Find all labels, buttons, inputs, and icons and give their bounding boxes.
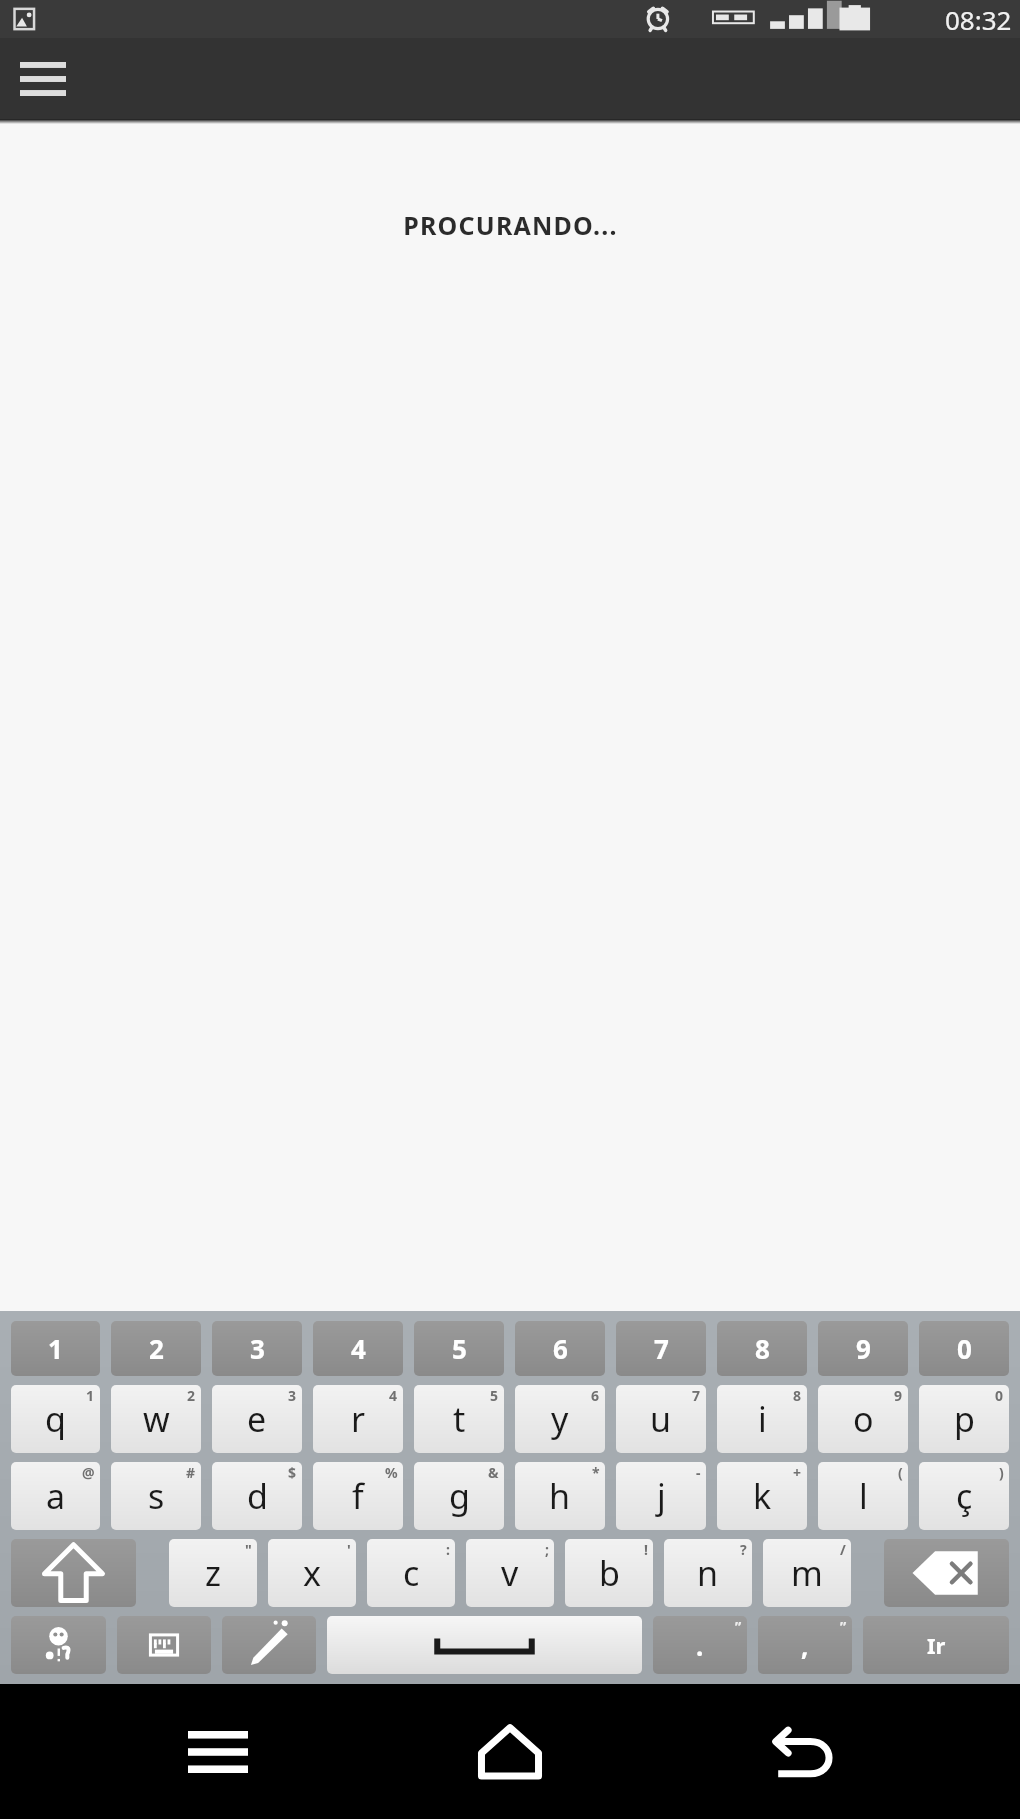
button[interactable]: 2 bbox=[111, 1321, 201, 1376]
button[interactable]: u bbox=[616, 1385, 706, 1453]
staticText: 5 bbox=[452, 1331, 467, 1366]
staticText: 2 bbox=[149, 1331, 164, 1366]
button[interactable]: a bbox=[11, 1462, 100, 1530]
staticText: u bbox=[650, 1396, 672, 1442]
staticText: % bbox=[385, 1463, 398, 1482]
staticText: ” bbox=[735, 1617, 742, 1636]
button[interactable]: w bbox=[111, 1385, 201, 1453]
button[interactable]: l bbox=[818, 1462, 908, 1530]
button[interactable]: i bbox=[717, 1385, 807, 1453]
button[interactable]: h bbox=[515, 1462, 605, 1530]
staticText: m bbox=[791, 1550, 823, 1596]
staticText: k bbox=[753, 1473, 772, 1519]
button[interactable]: q bbox=[11, 1385, 100, 1453]
button[interactable]: t bbox=[414, 1385, 504, 1453]
button[interactable]: 6 bbox=[515, 1321, 605, 1376]
staticText: r bbox=[351, 1396, 366, 1442]
staticText: ç bbox=[956, 1473, 973, 1519]
button[interactable]: Recent apps bbox=[143, 1697, 293, 1807]
button[interactable]: 3 bbox=[212, 1321, 302, 1376]
staticText: j bbox=[657, 1473, 666, 1519]
staticText: s bbox=[148, 1473, 165, 1519]
staticText: , bbox=[801, 1628, 809, 1663]
staticText: x bbox=[303, 1550, 321, 1596]
staticText: 3 bbox=[288, 1386, 297, 1405]
staticText: a bbox=[46, 1473, 66, 1519]
staticText: PROCURANDO... bbox=[403, 208, 618, 242]
staticText: 9 bbox=[894, 1386, 903, 1405]
button[interactable]: r bbox=[313, 1385, 403, 1453]
button[interactable]: 0 bbox=[919, 1321, 1009, 1376]
button[interactable]: 1 bbox=[11, 1321, 100, 1376]
staticText: i bbox=[758, 1396, 767, 1442]
button[interactable]: . bbox=[653, 1616, 747, 1674]
staticText: 9 bbox=[856, 1331, 871, 1366]
button[interactable]: Handwriting bbox=[222, 1616, 316, 1674]
button[interactable]: 4 bbox=[313, 1321, 403, 1376]
button[interactable]: , bbox=[758, 1616, 852, 1674]
staticText: 8 bbox=[793, 1386, 802, 1405]
button[interactable]: f bbox=[313, 1462, 403, 1530]
button[interactable]: ç bbox=[919, 1462, 1009, 1530]
staticText: d bbox=[247, 1473, 268, 1519]
staticText: ' bbox=[347, 1540, 351, 1559]
button[interactable]: Backspace bbox=[884, 1539, 1009, 1607]
button[interactable]: Shift bbox=[11, 1539, 136, 1607]
button[interactable]: y bbox=[515, 1385, 605, 1453]
button[interactable]: Space bbox=[327, 1616, 642, 1674]
staticText: q bbox=[45, 1396, 66, 1442]
button[interactable]: Menu bbox=[12, 51, 74, 107]
staticText: 2 bbox=[187, 1386, 196, 1405]
staticText: 0 bbox=[957, 1331, 972, 1366]
staticText: p bbox=[954, 1396, 975, 1442]
button[interactable]: Symbols bbox=[11, 1616, 106, 1674]
button[interactable]: e bbox=[212, 1385, 302, 1453]
staticText: y bbox=[551, 1396, 569, 1442]
button[interactable]: z bbox=[169, 1539, 257, 1607]
button[interactable]: o bbox=[818, 1385, 908, 1453]
button[interactable]: p bbox=[919, 1385, 1009, 1453]
button[interactable]: c bbox=[367, 1539, 455, 1607]
staticText: - bbox=[696, 1463, 701, 1482]
staticText: f bbox=[352, 1473, 364, 1519]
staticText: # bbox=[186, 1463, 196, 1482]
button[interactable]: 8 bbox=[717, 1321, 807, 1376]
button[interactable]: 5 bbox=[414, 1321, 504, 1376]
staticText: 3 bbox=[250, 1331, 265, 1366]
staticText: 5 bbox=[490, 1386, 499, 1405]
button[interactable]: 9 bbox=[818, 1321, 908, 1376]
staticText: : bbox=[446, 1540, 450, 1559]
staticText: g bbox=[449, 1473, 470, 1519]
button[interactable]: b bbox=[565, 1539, 653, 1607]
button[interactable]: Home bbox=[435, 1697, 585, 1807]
button[interactable]: n bbox=[664, 1539, 752, 1607]
staticText: $ bbox=[288, 1463, 297, 1482]
button[interactable]: Ir bbox=[863, 1616, 1009, 1674]
staticText: n bbox=[697, 1550, 719, 1596]
button[interactable]: g bbox=[414, 1462, 504, 1530]
staticText: ! bbox=[644, 1540, 648, 1559]
staticText: ? bbox=[740, 1540, 747, 1559]
staticText: c bbox=[403, 1550, 420, 1596]
staticText: h bbox=[549, 1473, 571, 1519]
staticText: 7 bbox=[692, 1386, 701, 1405]
button[interactable]: Back bbox=[728, 1697, 878, 1807]
staticText: Ir bbox=[927, 1630, 946, 1660]
button[interactable]: Keyboard settings bbox=[117, 1616, 211, 1674]
button[interactable]: k bbox=[717, 1462, 807, 1530]
staticText: + bbox=[793, 1463, 802, 1482]
button[interactable]: 7 bbox=[616, 1321, 706, 1376]
button[interactable]: d bbox=[212, 1462, 302, 1530]
staticText: / bbox=[840, 1540, 846, 1559]
staticText: v bbox=[501, 1550, 519, 1596]
button[interactable]: x bbox=[268, 1539, 356, 1607]
button[interactable]: v bbox=[466, 1539, 554, 1607]
button[interactable]: j bbox=[616, 1462, 706, 1530]
button[interactable]: m bbox=[763, 1539, 851, 1607]
staticText: 8 bbox=[755, 1331, 770, 1366]
staticText: o bbox=[853, 1396, 874, 1442]
staticText: 6 bbox=[553, 1331, 568, 1366]
staticText: 08:32 bbox=[945, 2, 1012, 37]
staticText: 4 bbox=[351, 1331, 366, 1366]
button[interactable]: s bbox=[111, 1462, 201, 1530]
